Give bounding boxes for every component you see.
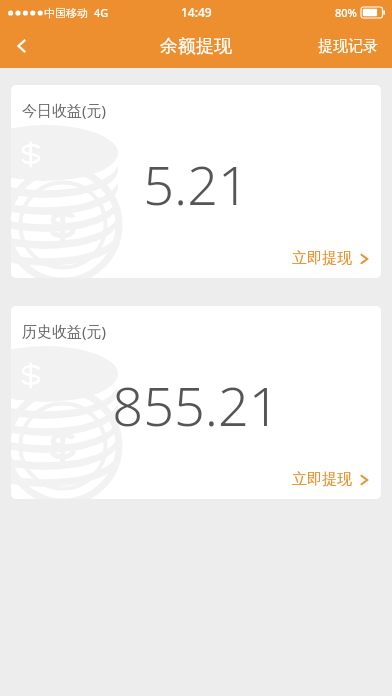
staticText: 立即提现	[292, 470, 352, 489]
staticText: 5.21	[11, 147, 381, 221]
button[interactable]: 今日收益(元)	[11, 85, 381, 278]
button[interactable]: 历史收益(元)	[11, 306, 381, 499]
staticText: 855.21	[11, 368, 381, 442]
staticText: 80%	[335, 5, 357, 20]
staticText: 4G	[94, 5, 109, 20]
button[interactable]: 立即提现	[282, 239, 381, 278]
staticText: 今日收益(元)	[22, 100, 107, 120]
button[interactable]: Back	[0, 24, 44, 68]
staticText: 提现记录	[318, 37, 378, 56]
staticText: 中国移动	[44, 6, 88, 20]
button[interactable]: 提现记录	[304, 29, 392, 64]
staticText: 历史收益(元)	[22, 321, 107, 341]
button[interactable]: 立即提现	[282, 460, 381, 499]
staticText: 14:49	[181, 4, 212, 20]
staticText: 余额提现	[160, 35, 232, 58]
staticText: 立即提现	[292, 249, 352, 268]
